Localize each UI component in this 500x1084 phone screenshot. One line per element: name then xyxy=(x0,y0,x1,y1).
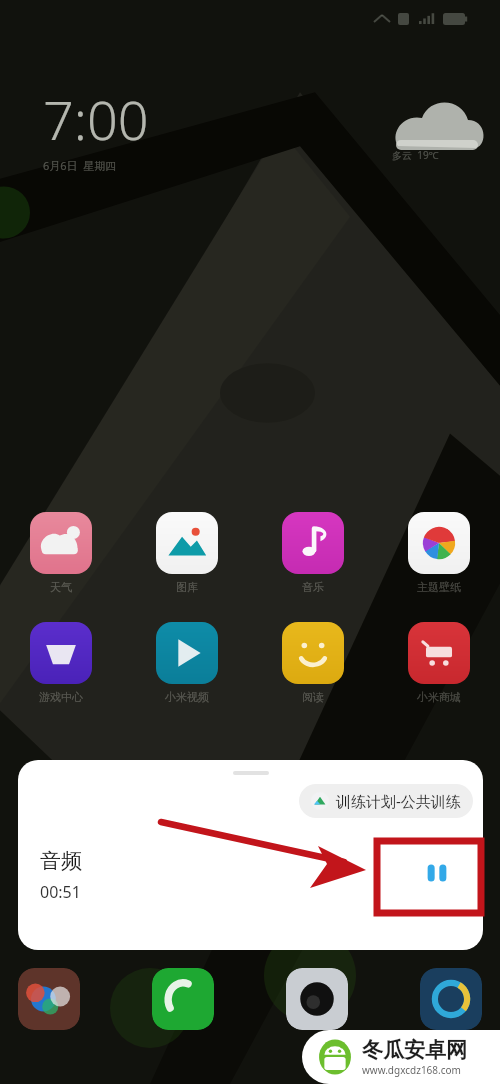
staticText: 音乐 xyxy=(302,580,324,594)
button[interactable]: 训练计划-公共训练 xyxy=(299,784,473,818)
staticText: 6月6日 星期四 xyxy=(43,158,117,173)
button[interactable]: browser xyxy=(420,968,482,1030)
staticText: 多云 19℃ xyxy=(392,148,439,162)
staticText: 7:00 xyxy=(43,82,149,156)
button[interactable]: 主题壁纸 xyxy=(396,512,482,594)
button[interactable]: 小米视频 xyxy=(144,622,230,704)
button[interactable]: 小米商城 xyxy=(396,622,482,704)
staticText: 天气 xyxy=(50,580,72,594)
staticText: 00:51 xyxy=(40,881,81,903)
button[interactable]: 游戏中心 xyxy=(18,622,104,704)
button[interactable]: phone xyxy=(152,968,214,1030)
button[interactable]: 天气 xyxy=(18,512,104,594)
button[interactable]: assistant xyxy=(18,968,80,1030)
button[interactable]: 图库 xyxy=(144,512,230,594)
button[interactable]: camera xyxy=(286,968,348,1030)
staticText: 冬瓜安卓网 xyxy=(362,1037,467,1063)
staticText: 阅读 xyxy=(302,690,324,704)
button[interactable]: 音乐 xyxy=(270,512,356,594)
staticText: 小米商城 xyxy=(417,690,461,704)
staticText: www.dgxcdz168.com xyxy=(362,1063,461,1077)
staticText: 音频 xyxy=(40,848,82,874)
button[interactable]: 阅读 xyxy=(270,622,356,704)
staticText: 主题壁纸 xyxy=(417,580,461,594)
button[interactable]: Pause xyxy=(401,845,473,901)
staticText: 训练计划-公共训练 xyxy=(336,791,461,811)
staticText: 小米视频 xyxy=(165,690,209,704)
staticText: 游戏中心 xyxy=(39,690,83,704)
staticText: 图库 xyxy=(176,580,198,594)
